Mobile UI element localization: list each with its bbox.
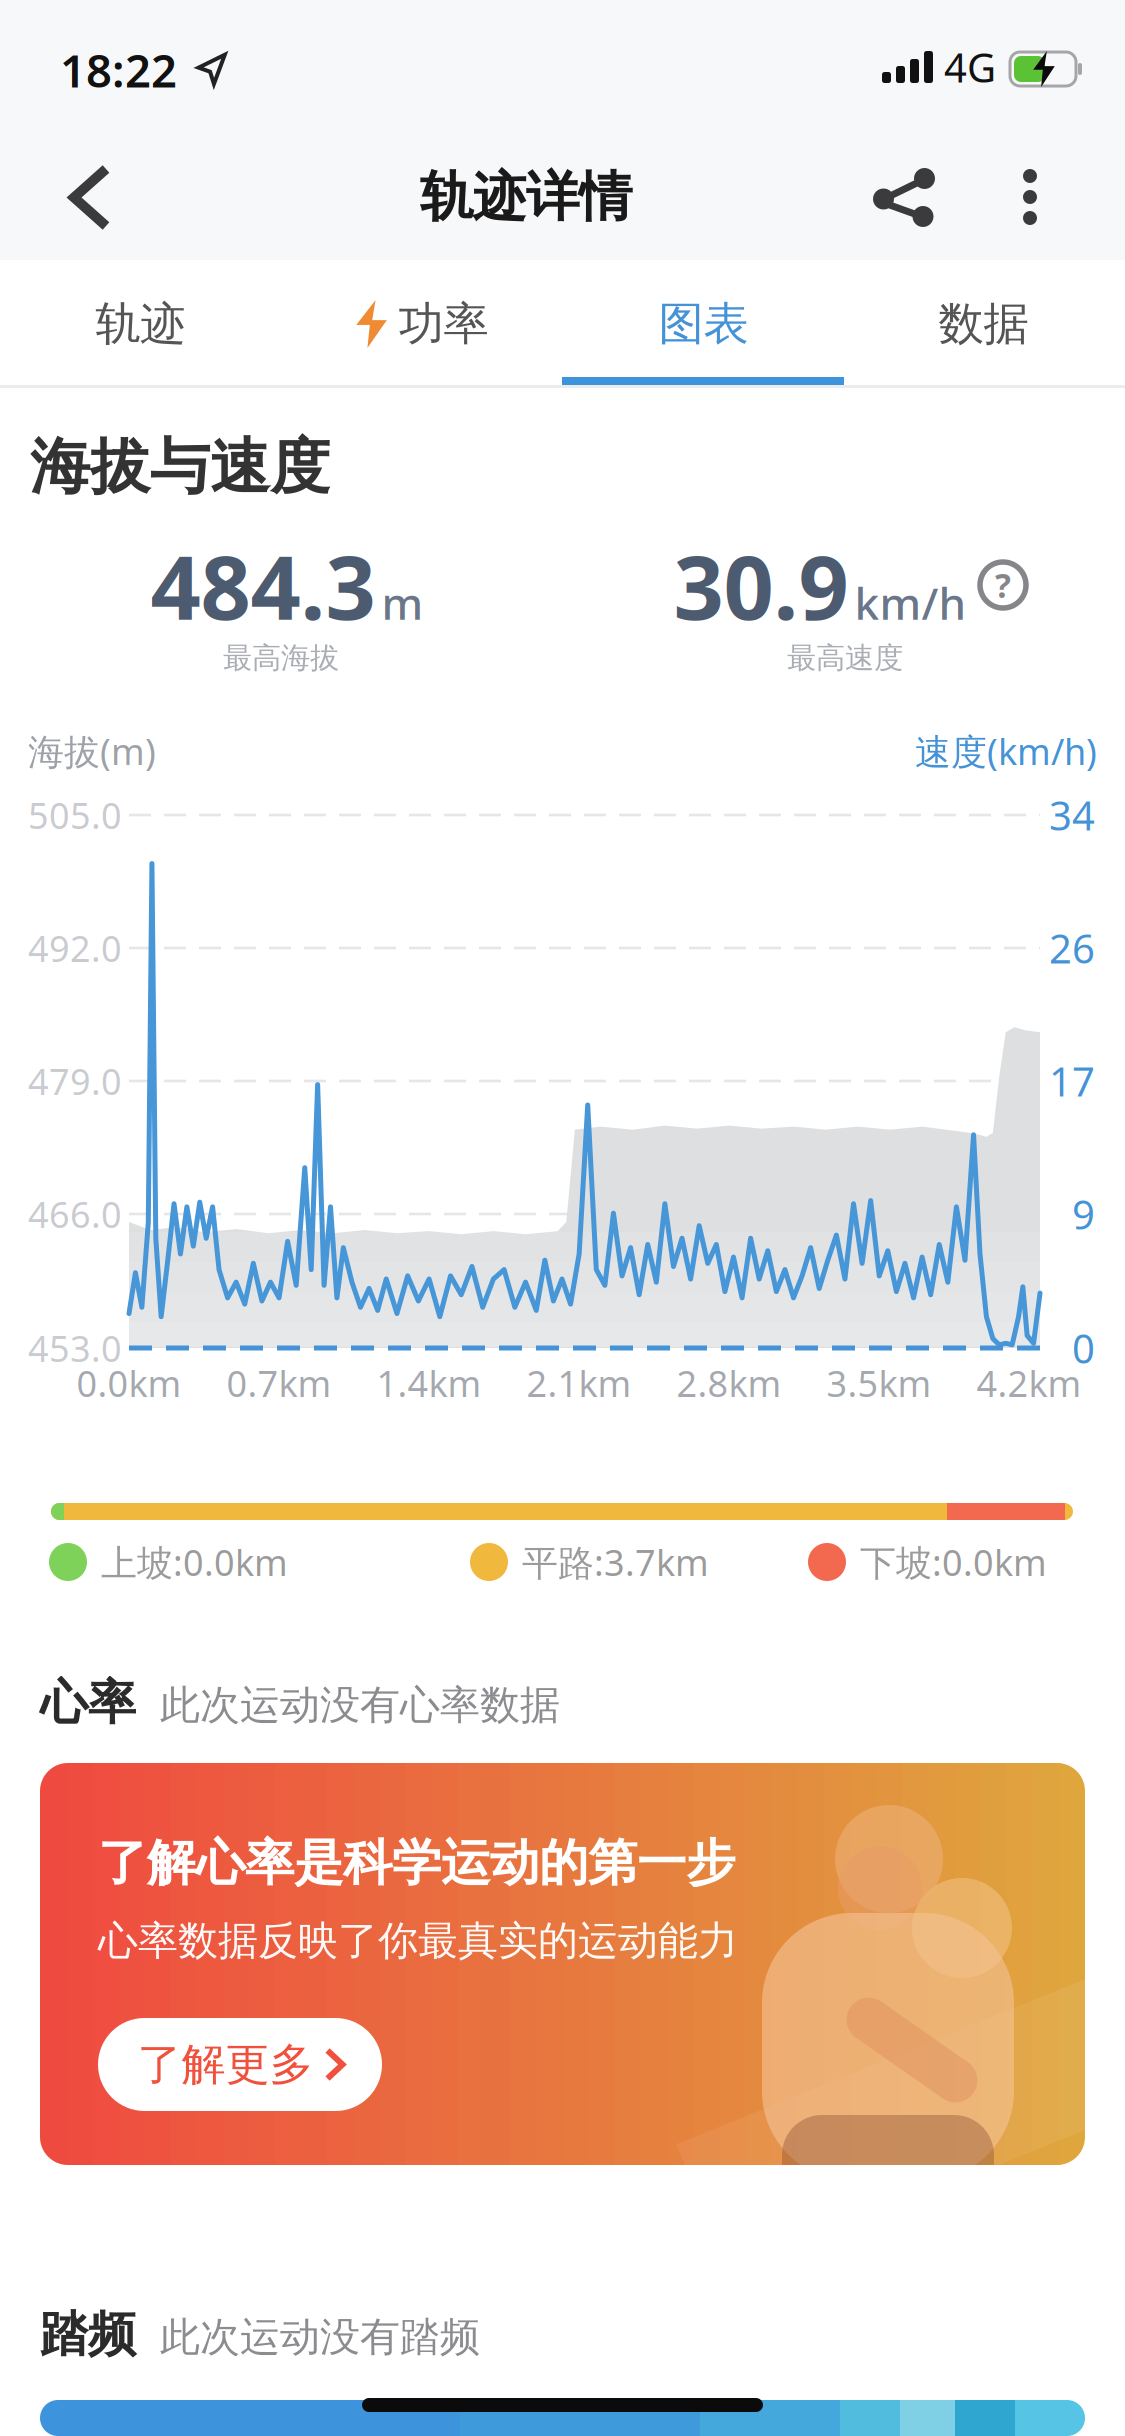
staticText: 速度(km/h) xyxy=(915,727,1097,775)
staticText: 心率数据反映了你最真实的运动能力 xyxy=(98,1916,738,1965)
staticText: 功率 xyxy=(398,296,488,352)
staticText: 484.3 xyxy=(150,527,375,644)
staticText: 492.0 xyxy=(28,924,122,972)
staticText: 30.9 xyxy=(673,527,848,644)
staticText: 0.7km xyxy=(226,1359,331,1407)
staticText: m xyxy=(381,573,423,632)
button[interactable]: 了解更多 xyxy=(98,2018,382,2111)
staticText: 数据 xyxy=(938,296,1028,352)
staticText: 453.0 xyxy=(28,1324,122,1372)
staticText: 505.0 xyxy=(28,791,122,839)
staticText: 2.1km xyxy=(526,1359,631,1407)
button[interactable]: 功率 xyxy=(281,260,562,388)
staticText: ? xyxy=(995,563,1011,607)
staticText: 上坡:0.0km xyxy=(101,1538,288,1586)
staticText: 轨迹 xyxy=(95,296,185,352)
staticText: 海拔与速度 xyxy=(30,430,330,504)
staticText: 此次运动没有心率数据 xyxy=(160,1681,560,1730)
staticText: 平路:3.7km xyxy=(522,1538,709,1586)
button[interactable]: 帮助 xyxy=(968,550,1038,620)
staticText: 3.5km xyxy=(826,1359,931,1407)
staticText: 下坡:0.0km xyxy=(860,1538,1047,1586)
button[interactable]: 更多 xyxy=(995,152,1065,242)
staticText: 9 xyxy=(1072,1187,1095,1240)
staticText: 了解心率是科学运动的第一步 xyxy=(98,1833,735,1893)
staticText: 26 xyxy=(1049,921,1095,974)
button[interactable]: 数据 xyxy=(843,260,1124,388)
button[interactable]: 了解心率是科学运动的第一步 xyxy=(40,1763,1085,2165)
staticText: 图表 xyxy=(658,296,748,352)
staticText: 4.2km xyxy=(976,1359,1081,1407)
button[interactable]: 轨迹 xyxy=(0,260,281,388)
button[interactable]: 图表 xyxy=(563,260,844,388)
staticText: 此次运动没有踏频 xyxy=(160,2313,480,2362)
staticText: 海拔(m) xyxy=(28,727,156,775)
staticText: 最高速度 xyxy=(787,640,903,676)
staticText: 最高海拔 xyxy=(223,640,339,676)
staticText: 踏频 xyxy=(40,2305,136,2364)
button[interactable]: 分享 xyxy=(859,153,949,243)
staticText: 17 xyxy=(1049,1054,1095,1107)
button[interactable]: 返回 xyxy=(50,152,130,242)
staticText: 轨迹详情 xyxy=(420,164,632,230)
staticText: km/h xyxy=(854,573,966,632)
staticText: 466.0 xyxy=(28,1190,122,1238)
staticText: 479.0 xyxy=(28,1057,122,1105)
staticText: 34 xyxy=(1049,788,1095,841)
staticText: 0.0km xyxy=(76,1359,181,1407)
staticText: 2.8km xyxy=(676,1359,781,1407)
staticText: 4G xyxy=(944,40,996,93)
staticText: 心率 xyxy=(40,1673,136,1732)
staticText: 18:22 xyxy=(60,40,177,100)
staticText: 1.4km xyxy=(376,1359,481,1407)
staticText: 0 xyxy=(1072,1321,1095,1374)
staticText: 了解更多 xyxy=(137,2037,313,2091)
